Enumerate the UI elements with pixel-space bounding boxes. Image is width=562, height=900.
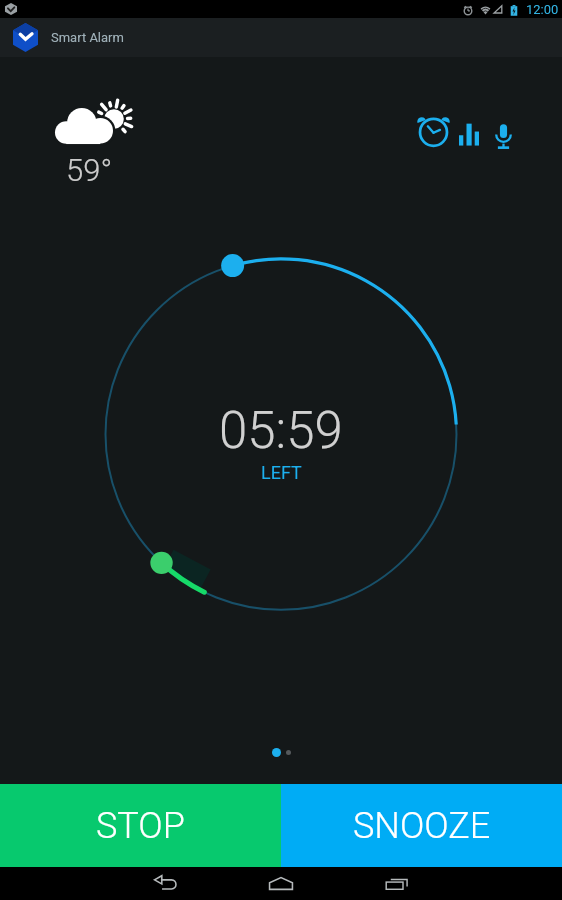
staticText: 05:59 (219, 401, 343, 461)
button[interactable]: Back (145, 867, 185, 900)
staticText: 12:00 (526, 2, 559, 17)
button[interactable]: Recents (377, 867, 417, 900)
staticText: LEFT (261, 462, 302, 483)
staticText: SNOOZE (353, 805, 491, 847)
button[interactable]: Statistics (452, 114, 486, 154)
staticText: Smart Alarm (51, 30, 124, 45)
button[interactable]: SNOOZE (281, 784, 562, 867)
staticText: 59° (66, 152, 113, 188)
button[interactable]: STOP (0, 784, 281, 867)
button[interactable]: Alarm (414, 114, 452, 154)
staticText: STOP (96, 805, 185, 847)
button[interactable]: Voice (486, 114, 520, 154)
button[interactable]: Home (261, 867, 301, 900)
button[interactable]: Smart Alarm (0, 18, 562, 57)
